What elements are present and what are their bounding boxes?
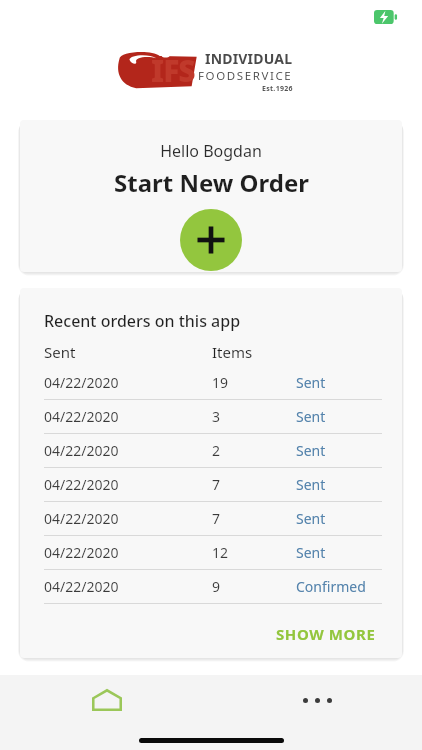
staticText: 04/22/2020 xyxy=(44,373,212,392)
staticText: Sent xyxy=(44,342,212,362)
staticText: 04/22/2020 xyxy=(44,407,212,426)
button[interactable]: 04/22/2020 xyxy=(44,502,382,536)
staticText: 04/22/2020 xyxy=(44,441,212,460)
staticText: 2 xyxy=(212,441,296,460)
staticText: 7 xyxy=(212,509,296,528)
staticText: Confirmed xyxy=(296,577,366,596)
staticText: FOODSERVICE xyxy=(198,68,293,84)
button[interactable]: 04/22/2020 xyxy=(44,536,382,570)
button[interactable]: 04/22/2020 xyxy=(44,400,382,434)
button[interactable]: 04/22/2020 xyxy=(44,570,382,604)
staticText: Start New Order xyxy=(114,166,309,199)
staticText: SHOW MORE xyxy=(276,624,376,644)
button[interactable]: Start new order xyxy=(180,209,242,271)
button[interactable]: SHOW MORE xyxy=(270,618,382,650)
staticText: Sent xyxy=(296,543,326,562)
staticText: 7 xyxy=(212,475,296,494)
staticText: Items xyxy=(212,342,296,362)
staticText: Sent xyxy=(296,509,326,528)
staticText: 04/22/2020 xyxy=(44,577,212,596)
staticText: Sent xyxy=(296,475,326,494)
staticText: 9 xyxy=(212,577,296,596)
staticText: 3 xyxy=(212,407,296,426)
staticText: 04/22/2020 xyxy=(44,475,212,494)
staticText: 04/22/2020 xyxy=(44,509,212,528)
button[interactable]: Home xyxy=(80,681,134,719)
staticText: 19 xyxy=(212,373,296,392)
staticText: Sent xyxy=(296,441,326,460)
button[interactable]: More options xyxy=(290,681,344,719)
staticText: Hello Bogdan xyxy=(160,140,262,162)
staticText: IFS xyxy=(151,50,195,91)
staticText: 12 xyxy=(212,543,296,562)
staticText: Sent xyxy=(296,373,326,392)
button[interactable]: 04/22/2020 xyxy=(44,434,382,468)
staticText: 04/22/2020 xyxy=(44,543,212,562)
staticText: Est.1926 xyxy=(262,84,293,94)
other: Battery charging xyxy=(374,10,398,24)
button[interactable]: 04/22/2020 xyxy=(44,468,382,502)
staticText: Sent xyxy=(296,407,326,426)
staticText: INDIVIDUAL xyxy=(205,49,293,68)
button[interactable]: 04/22/2020 xyxy=(44,366,382,400)
staticText: Recent orders on this app xyxy=(44,310,241,332)
